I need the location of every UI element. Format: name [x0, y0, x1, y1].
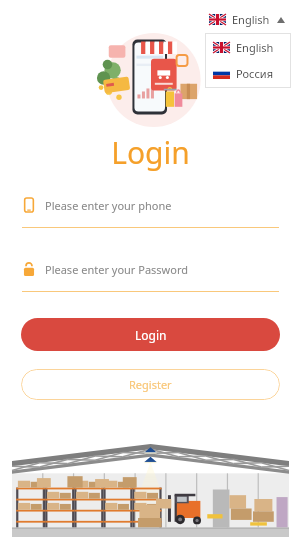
staticText: Россия: [236, 66, 273, 81]
button[interactable]: Login: [21, 318, 280, 351]
button[interactable]: Россия: [205, 64, 291, 83]
staticText: Please enter your phone: [45, 198, 172, 213]
staticText: Login: [135, 327, 167, 343]
button[interactable]: Please enter your Password: [22, 261, 279, 292]
other: Collapse language menu: [277, 17, 285, 23]
button[interactable]: English: [205, 10, 289, 29]
staticText: Register: [129, 377, 172, 392]
staticText: English: [232, 12, 270, 27]
button[interactable]: Please enter your phone: [22, 197, 279, 228]
button[interactable]: English: [205, 38, 291, 57]
button[interactable]: Register: [21, 369, 280, 400]
staticText: Login: [0, 132, 301, 173]
staticText: English: [236, 40, 274, 55]
staticText: Please enter your Password: [45, 262, 188, 277]
